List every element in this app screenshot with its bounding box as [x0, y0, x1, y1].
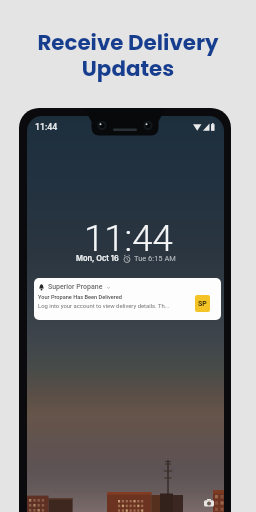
staticText: Your Propane Has Been Delivered: [38, 294, 122, 301]
staticText: Superior Propane: [48, 283, 103, 291]
staticText: 11:44: [35, 122, 58, 132]
button[interactable]: Superior Propane: [34, 278, 221, 320]
staticText: Mon, Oct 16: [76, 254, 119, 263]
staticText: Tue 6:15 AM: [134, 254, 176, 263]
button[interactable]: Camera: [202, 496, 216, 510]
staticText: SP: [198, 300, 207, 308]
staticText: Log into your account to view delivery d…: [38, 303, 170, 310]
staticText: 11:44: [84, 217, 173, 260]
staticText: Receive Delivery Updates: [37, 28, 219, 83]
